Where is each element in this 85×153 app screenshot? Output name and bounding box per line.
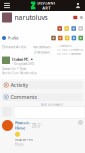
button[interactable]: Hide comment [78, 120, 83, 125]
staticText: ART [42, 5, 50, 11]
button[interactable]: Comments [2, 93, 83, 101]
button[interactable]: Shop [73, 16, 77, 19]
staticText: 12,984 Comments [57, 48, 83, 51]
staticText: Itakei PC ✦ [12, 56, 33, 62]
staticText: DEVIANT [37, 0, 55, 6]
staticText: 43,989 Pageviews [57, 52, 81, 55]
staticText: Needs Core Membership [2, 71, 37, 75]
button[interactable]: Activity [2, 81, 83, 89]
staticText: Deviant Artist [2, 44, 26, 49]
staticText: HOLA APPRO [15, 138, 33, 141]
staticText: Mar 26, 2013 [32, 122, 42, 129]
staticText: Comments [10, 93, 37, 101]
staticText: Add a Comment [41, 103, 63, 106]
staticText: PeanutHime [15, 120, 30, 131]
button[interactable]: Points [80, 16, 83, 19]
staticText: ~Dingbats64HD [12, 62, 34, 66]
button[interactable]: Add a comment [14, 106, 85, 118]
staticText: narutoluvs [14, 13, 47, 22]
staticText: Activity [10, 81, 28, 89]
staticText: Deviant for 7 Years [2, 67, 26, 71]
button[interactable]: Reply [15, 143, 23, 146]
staticText: Reply [15, 143, 23, 146]
button[interactable]: Account [71, 0, 85, 11]
button[interactable]: Profile [2, 35, 19, 41]
staticText: Profile [8, 35, 19, 41]
staticText: Unknown [33, 49, 49, 55]
button[interactable]: Menu [0, 0, 14, 11]
staticText: 1 Deviation [57, 44, 72, 47]
staticText: narutoluvs [32, 44, 50, 49]
